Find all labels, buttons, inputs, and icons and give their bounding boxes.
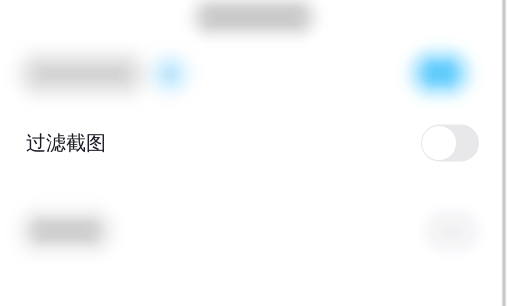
button[interactable]: 过滤截图 <box>0 116 510 170</box>
staticText: 过滤截图 <box>26 131 106 155</box>
